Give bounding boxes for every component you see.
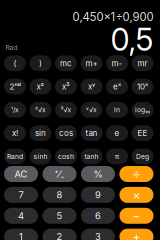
- button[interactable]: Rand: [4, 149, 26, 164]
- button[interactable]: 7: [4, 187, 38, 203]
- button[interactable]: ⁺⁄₋: [42, 166, 77, 182]
- button[interactable]: tan: [81, 125, 102, 141]
- staticText: 2ⁿᵈ: [9, 82, 20, 91]
- staticText: 3: [95, 231, 101, 240]
- button[interactable]: 4: [4, 208, 38, 224]
- button[interactable]: xʸ: [81, 79, 102, 94]
- staticText: 8: [56, 189, 62, 201]
- button[interactable]: 8: [42, 187, 77, 203]
- button[interactable]: sinh: [29, 149, 51, 164]
- staticText: ÷: [132, 167, 140, 181]
- staticText: sinh: [33, 152, 47, 160]
- button[interactable]: e: [106, 125, 128, 141]
- button[interactable]: 10ˣ: [132, 79, 153, 94]
- staticText: 4: [18, 210, 24, 221]
- staticText: 7: [18, 189, 23, 201]
- button[interactable]: ²√x: [29, 102, 51, 118]
- staticText: −: [132, 208, 140, 223]
- staticText: ²√x: [35, 106, 46, 114]
- staticText: log₁₀: [135, 106, 150, 114]
- button[interactable]: 1: [4, 229, 38, 240]
- staticText: x²: [36, 82, 44, 91]
- button[interactable]: mr: [132, 55, 153, 71]
- staticText: ×: [132, 188, 140, 202]
- staticText: e: [114, 128, 119, 138]
- button[interactable]: AC: [4, 166, 38, 182]
- staticText: 10ˣ: [137, 82, 148, 91]
- staticText: sin: [35, 128, 46, 138]
- button[interactable]: ³√x: [55, 102, 77, 118]
- button[interactable]: ln: [106, 102, 128, 118]
- staticText: ln: [114, 106, 120, 114]
- staticText: x³: [62, 82, 70, 91]
- staticText: ⁺⁄₋: [54, 168, 64, 180]
- button[interactable]: ʸ√x: [81, 102, 102, 118]
- staticText: 0,450×1÷0,900: [72, 10, 153, 24]
- staticText: ): [39, 58, 42, 68]
- staticText: tanh: [84, 152, 98, 160]
- button[interactable]: x³: [55, 79, 77, 94]
- button[interactable]: eˣ: [106, 79, 128, 94]
- button[interactable]: cosh: [55, 149, 77, 164]
- staticText: m-: [111, 58, 122, 68]
- staticText: 5: [56, 210, 62, 221]
- button[interactable]: 2: [42, 229, 77, 240]
- staticText: m+: [85, 58, 97, 68]
- staticText: 2: [56, 231, 62, 240]
- staticText: mr: [137, 58, 147, 68]
- button[interactable]: sin: [29, 125, 51, 141]
- button[interactable]: ): [29, 55, 51, 71]
- button[interactable]: 2ⁿᵈ: [4, 79, 26, 94]
- staticText: tan: [85, 128, 97, 138]
- button[interactable]: −: [119, 208, 153, 224]
- staticText: π: [115, 152, 119, 160]
- staticText: Deg: [136, 152, 149, 160]
- button[interactable]: x²: [29, 79, 51, 94]
- button[interactable]: (: [4, 55, 26, 71]
- button[interactable]: tanh: [81, 149, 102, 164]
- button[interactable]: m-: [106, 55, 128, 71]
- button[interactable]: 6: [81, 208, 115, 224]
- button[interactable]: ×: [119, 187, 153, 203]
- staticText: 9: [95, 189, 101, 201]
- button[interactable]: ¹/x: [4, 102, 26, 118]
- button[interactable]: 9: [81, 187, 115, 203]
- button[interactable]: 5: [42, 208, 77, 224]
- staticText: %: [93, 168, 102, 180]
- button[interactable]: x!: [4, 125, 26, 141]
- staticText: (: [13, 58, 16, 68]
- button[interactable]: EE: [132, 125, 153, 141]
- staticText: 6: [95, 210, 101, 221]
- button[interactable]: cos: [55, 125, 77, 141]
- button[interactable]: mc: [55, 55, 77, 71]
- button[interactable]: %: [81, 166, 115, 182]
- staticText: +: [132, 229, 140, 240]
- staticText: 0,5: [110, 21, 153, 58]
- staticText: Rad: [5, 43, 17, 52]
- button[interactable]: 3: [81, 229, 115, 240]
- staticText: ³√x: [60, 106, 71, 114]
- button[interactable]: log₁₀: [132, 102, 153, 118]
- staticText: xʸ: [88, 82, 95, 91]
- staticText: mc: [60, 58, 72, 68]
- button[interactable]: Deg: [132, 149, 153, 164]
- staticText: 1: [19, 231, 23, 240]
- button[interactable]: ÷: [119, 166, 153, 182]
- button[interactable]: π: [106, 149, 128, 164]
- staticText: ʸ√x: [86, 106, 97, 114]
- staticText: cos: [59, 128, 73, 138]
- button[interactable]: m+: [81, 55, 102, 71]
- staticText: x!: [12, 128, 18, 138]
- staticText: eˣ: [113, 82, 121, 91]
- button[interactable]: +: [119, 229, 153, 240]
- staticText: cosh: [58, 152, 74, 160]
- staticText: Rand: [7, 152, 23, 160]
- staticText: ¹/x: [11, 106, 19, 114]
- staticText: AC: [14, 168, 27, 180]
- staticText: EE: [137, 128, 147, 138]
